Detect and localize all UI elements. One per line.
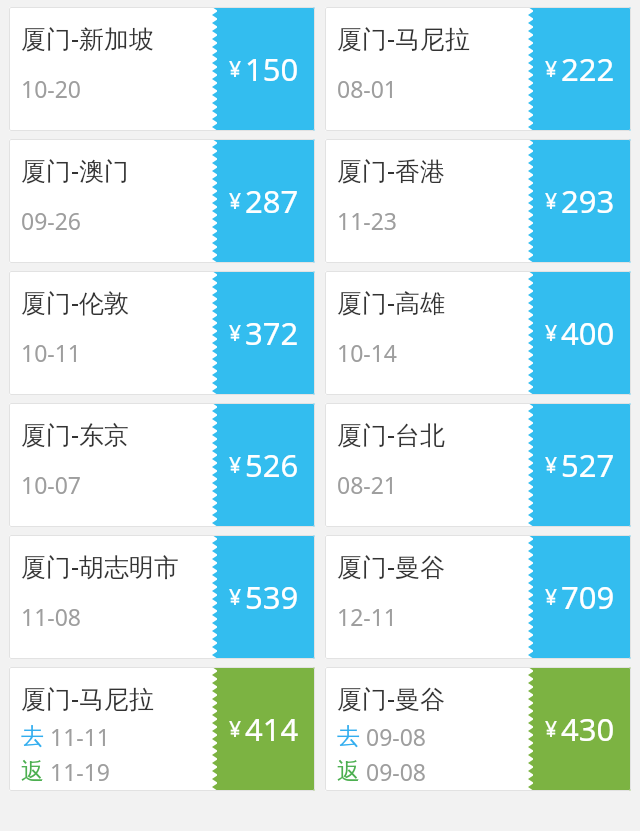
- button[interactable]: 厦门-台北: [325, 403, 631, 527]
- button[interactable]: 厦门-马尼拉: [325, 7, 631, 131]
- staticText: 09-08: [366, 721, 427, 752]
- staticText: 526: [245, 444, 299, 486]
- button[interactable]: 厦门-新加坡: [9, 7, 315, 131]
- staticText: ¥: [545, 319, 558, 348]
- staticText: ¥: [229, 55, 242, 84]
- staticText: 08-21: [337, 469, 398, 500]
- button[interactable]: 厦门-澳门: [9, 139, 315, 263]
- staticText: ¥: [229, 319, 242, 348]
- staticText: 厦门-马尼拉: [337, 21, 471, 55]
- staticText: 厦门-新加坡: [21, 21, 155, 55]
- staticText: 11-19: [50, 756, 111, 787]
- staticText: 09-08: [366, 756, 427, 787]
- button[interactable]: 厦门-高雄: [325, 271, 631, 395]
- staticText: 返: [21, 757, 44, 786]
- staticText: ¥: [545, 451, 558, 480]
- staticText: ¥: [229, 715, 242, 744]
- staticText: 11-11: [50, 721, 111, 752]
- staticText: 527: [561, 444, 615, 486]
- staticText: 12-11: [337, 601, 398, 632]
- button[interactable]: 厦门-马尼拉: [9, 667, 315, 791]
- staticText: 厦门-香港: [337, 153, 446, 187]
- staticText: 10-14: [337, 337, 398, 368]
- staticText: 150: [245, 48, 299, 90]
- staticText: 厦门-胡志明市: [21, 549, 180, 583]
- staticText: 去: [21, 722, 44, 751]
- button[interactable]: 厦门-伦敦: [9, 271, 315, 395]
- staticText: 400: [561, 312, 615, 354]
- staticText: ¥: [229, 583, 242, 612]
- button[interactable]: 厦门-东京: [9, 403, 315, 527]
- staticText: 厦门-高雄: [337, 285, 446, 319]
- staticText: 293: [561, 180, 615, 222]
- staticText: 539: [245, 576, 299, 618]
- staticText: 222: [561, 48, 615, 90]
- staticText: 10-07: [21, 469, 82, 500]
- staticText: ¥: [545, 583, 558, 612]
- staticText: 厦门-伦敦: [21, 285, 130, 319]
- staticText: 厦门-马尼拉: [21, 681, 155, 715]
- staticText: 10-11: [21, 337, 82, 368]
- staticText: 11-08: [21, 601, 82, 632]
- staticText: ¥: [229, 451, 242, 480]
- staticText: 厦门-曼谷: [337, 681, 446, 715]
- button[interactable]: 厦门-胡志明市: [9, 535, 315, 659]
- staticText: 08-01: [337, 73, 398, 104]
- staticText: 返: [337, 757, 360, 786]
- staticText: 709: [561, 576, 615, 618]
- staticText: 430: [561, 708, 615, 750]
- staticText: 厦门-曼谷: [337, 549, 446, 583]
- staticText: 287: [245, 180, 299, 222]
- staticText: 11-23: [337, 205, 398, 236]
- staticText: 厦门-台北: [337, 417, 446, 451]
- staticText: 372: [245, 312, 299, 354]
- button[interactable]: 厦门-曼谷: [325, 667, 631, 791]
- button[interactable]: 厦门-香港: [325, 139, 631, 263]
- staticText: 厦门-澳门: [21, 153, 130, 187]
- staticText: ¥: [545, 55, 558, 84]
- staticText: 414: [245, 708, 299, 750]
- staticText: ¥: [545, 187, 558, 216]
- button[interactable]: 厦门-曼谷: [325, 535, 631, 659]
- staticText: 去: [337, 722, 360, 751]
- staticText: 厦门-东京: [21, 417, 130, 451]
- staticText: ¥: [229, 187, 242, 216]
- staticText: 09-26: [21, 205, 82, 236]
- staticText: ¥: [545, 715, 558, 744]
- staticText: 10-20: [21, 73, 82, 104]
